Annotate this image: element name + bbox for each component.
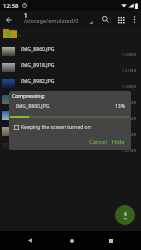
staticText: 13% xyxy=(103,103,125,110)
button[interactable]: Keeping the screen turned on xyxy=(12,123,93,132)
button[interactable]: Extract xyxy=(115,205,135,225)
button[interactable]: Parent directory xyxy=(0,28,141,44)
staticText: .. xyxy=(18,30,21,38)
staticText: IMG_8918.JPG xyxy=(21,62,55,69)
staticText: 1.21MB xyxy=(110,68,136,73)
button[interactable]: Grid view xyxy=(113,11,128,28)
staticText: Compressing: xyxy=(12,93,45,100)
staticText: Cancel xyxy=(89,138,108,146)
button[interactable]: IMG_9033.JPG xyxy=(0,108,141,124)
button[interactable]: IMG_9076.JPG xyxy=(0,124,141,140)
button[interactable]: Hide xyxy=(108,135,129,148)
staticText: 1.41MB xyxy=(110,148,136,153)
staticText: IMG_9012.JPG xyxy=(21,94,55,101)
button[interactable]: IMG_8860.JPG xyxy=(0,44,141,60)
staticText: 1.33MB xyxy=(110,132,136,137)
button[interactable]: IMG_9012.JPG xyxy=(0,92,141,108)
button[interactable]: More options xyxy=(128,11,140,28)
staticText: IMG_9033.JPG xyxy=(21,110,55,117)
staticText: Keeping the screen turned on xyxy=(21,124,91,131)
staticText: 1 xyxy=(24,11,28,20)
staticText: IMG_8860.JPG xyxy=(16,103,50,110)
button[interactable]: Home xyxy=(61,231,82,250)
staticText: 12:58 xyxy=(3,2,19,10)
staticText: 1.04MB xyxy=(110,84,136,89)
staticText: /storage/emulated/0 xyxy=(24,17,79,25)
staticText: IMG_8860.JPG xyxy=(21,46,55,53)
button[interactable]: Search xyxy=(98,11,113,28)
button[interactable]: Back xyxy=(0,11,18,28)
button[interactable]: Back xyxy=(19,231,40,250)
staticText: IMG_9076.JPG xyxy=(21,126,55,133)
staticText: 1.03MB xyxy=(110,52,136,57)
button[interactable]: Recents xyxy=(100,231,121,250)
button[interactable]: IMG_9111.JPG xyxy=(0,140,141,156)
button[interactable]: IMG_8982.JPG xyxy=(0,76,141,92)
button[interactable]: IMG_8918.JPG xyxy=(0,60,141,76)
staticText: 1.07MB xyxy=(110,100,136,105)
button[interactable]: Cancel xyxy=(85,135,112,148)
staticText: IMG_8982.JPG xyxy=(21,78,55,85)
staticText: 1.18MB xyxy=(110,116,136,121)
staticText: Hide xyxy=(112,138,125,146)
